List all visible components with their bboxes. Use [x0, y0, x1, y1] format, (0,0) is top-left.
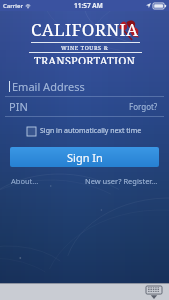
button[interactable]: Sign In	[10, 147, 159, 167]
staticText: 11:57 AM	[74, 1, 103, 10]
staticText: New user? Register...	[85, 176, 158, 186]
button[interactable]: About...	[10, 174, 40, 188]
button[interactable]: Email Address	[0, 77, 169, 97]
staticText: CALIFORNIA	[31, 18, 139, 41]
button[interactable]: Sign in automatically next time	[0, 123, 169, 139]
button[interactable]: Hide keyboard	[146, 286, 162, 299]
staticText: Forgot?	[129, 101, 158, 112]
staticText: Carrier	[3, 2, 23, 10]
staticText: TRANSPORTATION	[34, 53, 136, 64]
staticText: Sign in automatically next time	[40, 126, 142, 136]
staticText: PIN	[9, 99, 28, 114]
staticText: WINE TOURS &	[61, 44, 109, 51]
button[interactable]: New user? Register...	[84, 174, 159, 188]
staticText: Sign In	[67, 150, 103, 165]
other: Logo mark	[116, 18, 142, 42]
staticText: Email Address	[12, 79, 85, 94]
button[interactable]: PIN	[0, 97, 169, 117]
button[interactable]: Forgot?	[127, 99, 160, 114]
staticText: About...	[11, 176, 39, 186]
